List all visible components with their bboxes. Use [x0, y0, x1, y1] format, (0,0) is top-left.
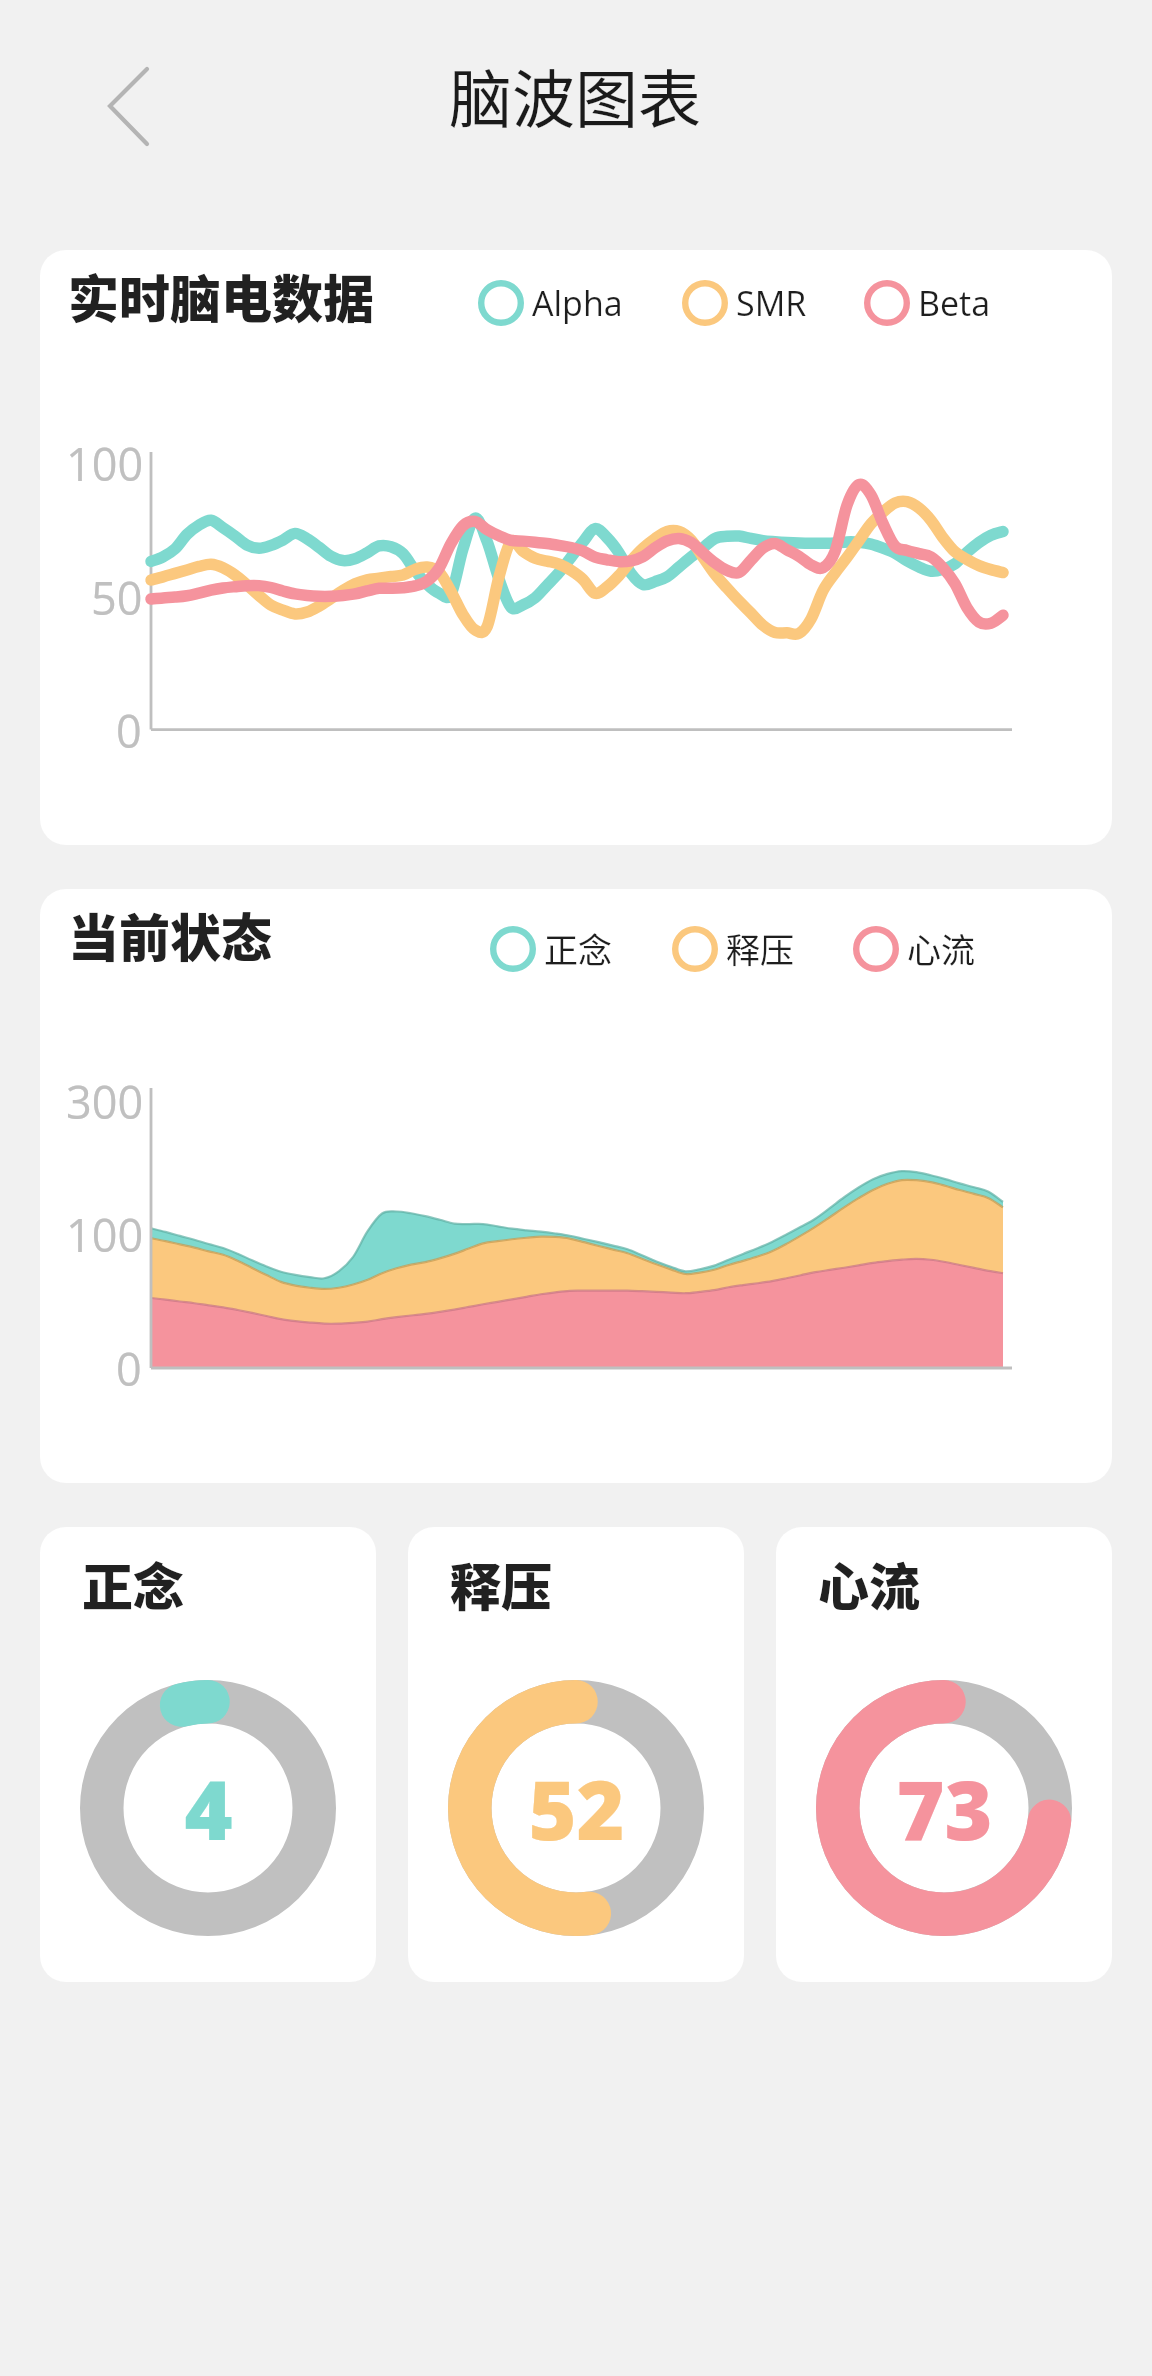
staticText: 释压 [726, 924, 794, 973]
staticText: 心流 [907, 924, 975, 973]
button[interactable]: Alpha [477, 279, 623, 327]
button[interactable]: 实时脑电数据 [40, 250, 1112, 845]
staticText: 当前状态 [68, 898, 273, 972]
button[interactable]: 心流 [852, 924, 975, 973]
staticText: 100 [66, 433, 144, 494]
staticText: 脑波图表 [449, 49, 701, 140]
staticText: 正念 [544, 924, 612, 973]
staticText: 实时脑电数据 [68, 259, 375, 333]
staticText: 0 [116, 1338, 142, 1399]
button[interactable]: 释压 [671, 924, 794, 973]
button[interactable]: 释压 [408, 1527, 744, 1982]
staticText: 100 [66, 1204, 144, 1265]
staticText: 73 [896, 1752, 993, 1864]
button[interactable]: SMR [681, 279, 807, 327]
staticText: 4 [184, 1752, 233, 1864]
staticText: 50 [91, 567, 143, 628]
button[interactable]: 正念 [489, 924, 612, 973]
staticText: 正念 [82, 1547, 185, 1621]
button[interactable]: Back [84, 58, 172, 146]
button[interactable]: Beta [863, 279, 991, 327]
staticText: Alpha [532, 280, 623, 326]
staticText: SMR [736, 280, 807, 326]
button[interactable]: 正念 [40, 1527, 376, 1982]
staticText: Beta [918, 280, 991, 326]
staticText: 心流 [818, 1547, 921, 1621]
staticText: 300 [66, 1071, 144, 1132]
staticText: 0 [116, 700, 142, 761]
staticText: 释压 [450, 1547, 553, 1621]
button[interactable]: 心流 [776, 1527, 1112, 1982]
button[interactable]: 当前状态 [40, 889, 1112, 1483]
staticText: 52 [528, 1752, 625, 1864]
